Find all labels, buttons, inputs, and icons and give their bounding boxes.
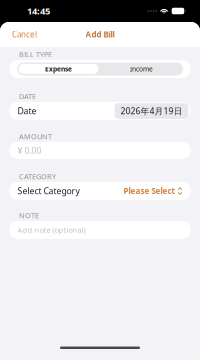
button[interactable]: Select Category (9, 182, 190, 200)
staticText: Expense (45, 64, 72, 74)
staticText: NOTE (19, 210, 39, 220)
staticText: Date (17, 105, 36, 117)
staticText: Select Category (17, 185, 79, 197)
staticText: CATEGORY (19, 171, 56, 181)
staticText: ¥ 0.00 (17, 145, 41, 156)
button[interactable]: Cancel (7, 24, 42, 45)
staticText: 14:45 (27, 5, 50, 17)
staticText: Please Select (123, 186, 174, 196)
staticText: Income (130, 64, 153, 74)
staticText: Cancel (12, 29, 37, 40)
staticText: 2026年4月19日 (120, 105, 182, 117)
staticText: BILL TYPE (19, 49, 52, 59)
staticText: Add note (optional) (17, 225, 85, 235)
button[interactable]: Income (100, 62, 183, 75)
button[interactable]: 2026年4月19日 (114, 103, 188, 119)
button[interactable]: Expense (17, 62, 100, 75)
staticText: DATE (19, 91, 36, 101)
staticText: AMOUNT (19, 131, 52, 141)
staticText: Add Bill (85, 29, 114, 40)
